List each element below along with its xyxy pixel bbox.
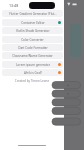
staticText: Classname/Name Generator	[12, 54, 53, 58]
staticText: Created by Timon Leone	[0, 79, 64, 83]
button[interactable]: Dark theme preview	[64, 0, 84, 150]
button[interactable]: Afrik is God?	[2, 69, 63, 76]
button[interactable]: Container Editor	[2, 19, 63, 26]
staticText: Afrik is God?	[24, 71, 42, 75]
button[interactable]: Lorem ipsum generator	[2, 61, 63, 68]
button[interactable]: Color Converter	[2, 36, 63, 43]
button[interactable]: Dart Code Formatter	[2, 44, 63, 51]
staticText: 13:48	[9, 3, 19, 8]
staticText: Container Editor	[21, 21, 45, 25]
staticText: Kotlin Shade Generator	[16, 29, 50, 33]
staticText: Lorem ipsum generator	[16, 63, 50, 67]
staticText: Dart Code Formatter	[18, 46, 48, 50]
button[interactable]: Flutter Gradient Generator (Flut…	[2, 10, 63, 17]
button[interactable]: Classname/Name Generator	[2, 52, 63, 59]
staticText: Flutter Gradient Generator (Flut…	[9, 12, 57, 16]
staticText: Color Converter	[21, 38, 44, 42]
button[interactable]: Kotlin Shade Generator	[2, 27, 63, 34]
